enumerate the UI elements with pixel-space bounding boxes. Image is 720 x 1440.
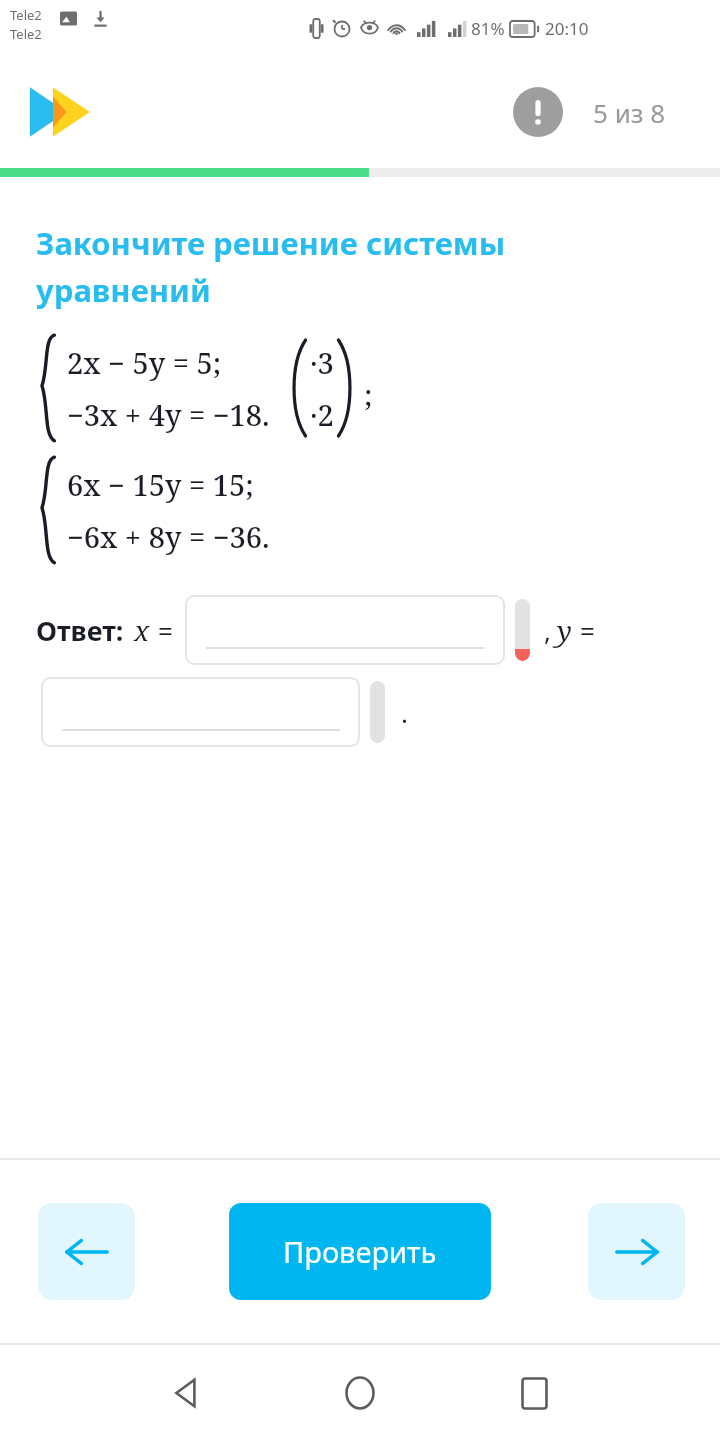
button[interactable]: Next bbox=[588, 1203, 685, 1300]
button[interactable]: Answer input bbox=[185, 595, 505, 665]
staticText: Tele2 bbox=[10, 25, 42, 43]
button[interactable]: Recents bbox=[498, 1357, 570, 1429]
staticText: 6x − 15y = 15; bbox=[67, 465, 254, 504]
staticText: 2x − 5y = 5; bbox=[67, 343, 222, 382]
button[interactable]: Back bbox=[150, 1357, 222, 1429]
button[interactable]: Logo bbox=[22, 82, 108, 142]
button[interactable]: Handle bbox=[515, 599, 530, 661]
button[interactable]: Info bbox=[513, 87, 666, 137]
staticText: Закончите решение системы уравнений bbox=[36, 222, 506, 311]
staticText: Ответ: bbox=[36, 612, 124, 649]
staticText: , bbox=[544, 613, 551, 648]
button[interactable]: Answer input bbox=[41, 677, 360, 747]
staticText: −3x + 4y = −18. bbox=[67, 395, 270, 434]
staticText: ·3 bbox=[310, 343, 334, 382]
staticText: 81% bbox=[471, 17, 505, 40]
staticText: ; bbox=[364, 375, 373, 414]
staticText: 20:10 bbox=[545, 17, 589, 40]
staticText: ·2 bbox=[310, 395, 334, 434]
button[interactable]: Handle bbox=[370, 681, 385, 743]
staticText: 5 из 8 bbox=[593, 95, 666, 130]
staticText: . bbox=[401, 695, 408, 730]
staticText: = bbox=[580, 613, 595, 648]
staticText: Проверить bbox=[283, 1232, 437, 1271]
button[interactable]: Home bbox=[324, 1357, 396, 1429]
staticText: = bbox=[158, 613, 173, 648]
staticText: y bbox=[557, 611, 572, 649]
staticText: Tele2 bbox=[10, 6, 42, 24]
staticText: −6x + 8y = −36. bbox=[67, 517, 270, 556]
staticText: x bbox=[134, 611, 150, 649]
button[interactable]: Previous bbox=[38, 1203, 135, 1300]
other: Info bbox=[513, 87, 563, 137]
button[interactable]: Проверить bbox=[229, 1203, 491, 1300]
